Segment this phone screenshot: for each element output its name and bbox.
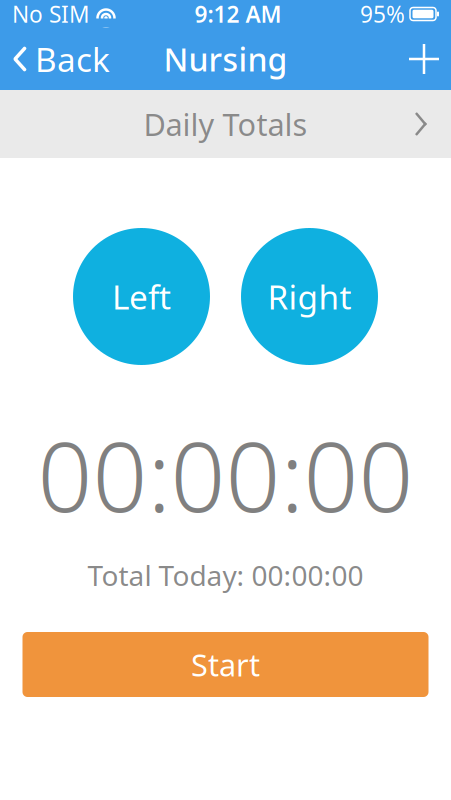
staticText: 9:12 AM [194, 0, 281, 29]
staticText: Total Today: 00:00:00 [87, 556, 363, 594]
button[interactable]: Left [73, 228, 210, 365]
staticText: Right [267, 274, 351, 319]
staticText: Start [191, 644, 260, 685]
staticText: Left [112, 274, 171, 319]
button[interactable]: Right [241, 228, 378, 365]
staticText: 95% [360, 0, 405, 29]
button[interactable]: Start [22, 632, 428, 697]
staticText: No SIM [12, 0, 90, 29]
staticText: Nursing [163, 38, 287, 80]
staticText: Daily Totals [143, 104, 307, 144]
staticText: Back [35, 37, 110, 81]
button[interactable]: Back [0, 28, 122, 90]
button[interactable]: Add [397, 28, 451, 90]
button[interactable]: Daily Totals [0, 90, 451, 158]
staticText: 00:00:00 [37, 411, 413, 538]
